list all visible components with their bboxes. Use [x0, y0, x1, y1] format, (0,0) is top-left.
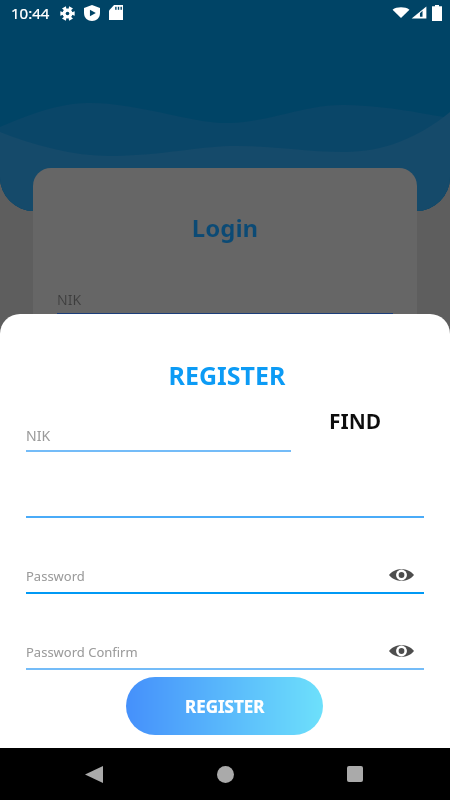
staticText: 10:44: [11, 3, 50, 23]
staticText: REGISTER: [2, 358, 450, 392]
button[interactable]: Back: [68, 748, 120, 800]
staticText: NIK: [26, 426, 51, 445]
button[interactable]: Recents: [329, 748, 381, 800]
button[interactable]: Home: [199, 748, 251, 800]
staticText: Password: [26, 567, 85, 585]
button[interactable]: Toggle password visibility: [383, 557, 419, 593]
button[interactable]: Toggle password visibility: [383, 633, 419, 669]
button[interactable]: FIND: [319, 397, 392, 446]
button[interactable]: REGISTER: [126, 677, 323, 735]
staticText: Login: [33, 211, 417, 244]
staticText: FIND: [329, 407, 382, 436]
staticText: NIK: [57, 290, 82, 309]
staticText: Password Confirm: [26, 643, 138, 661]
staticText: REGISTER: [185, 695, 265, 718]
